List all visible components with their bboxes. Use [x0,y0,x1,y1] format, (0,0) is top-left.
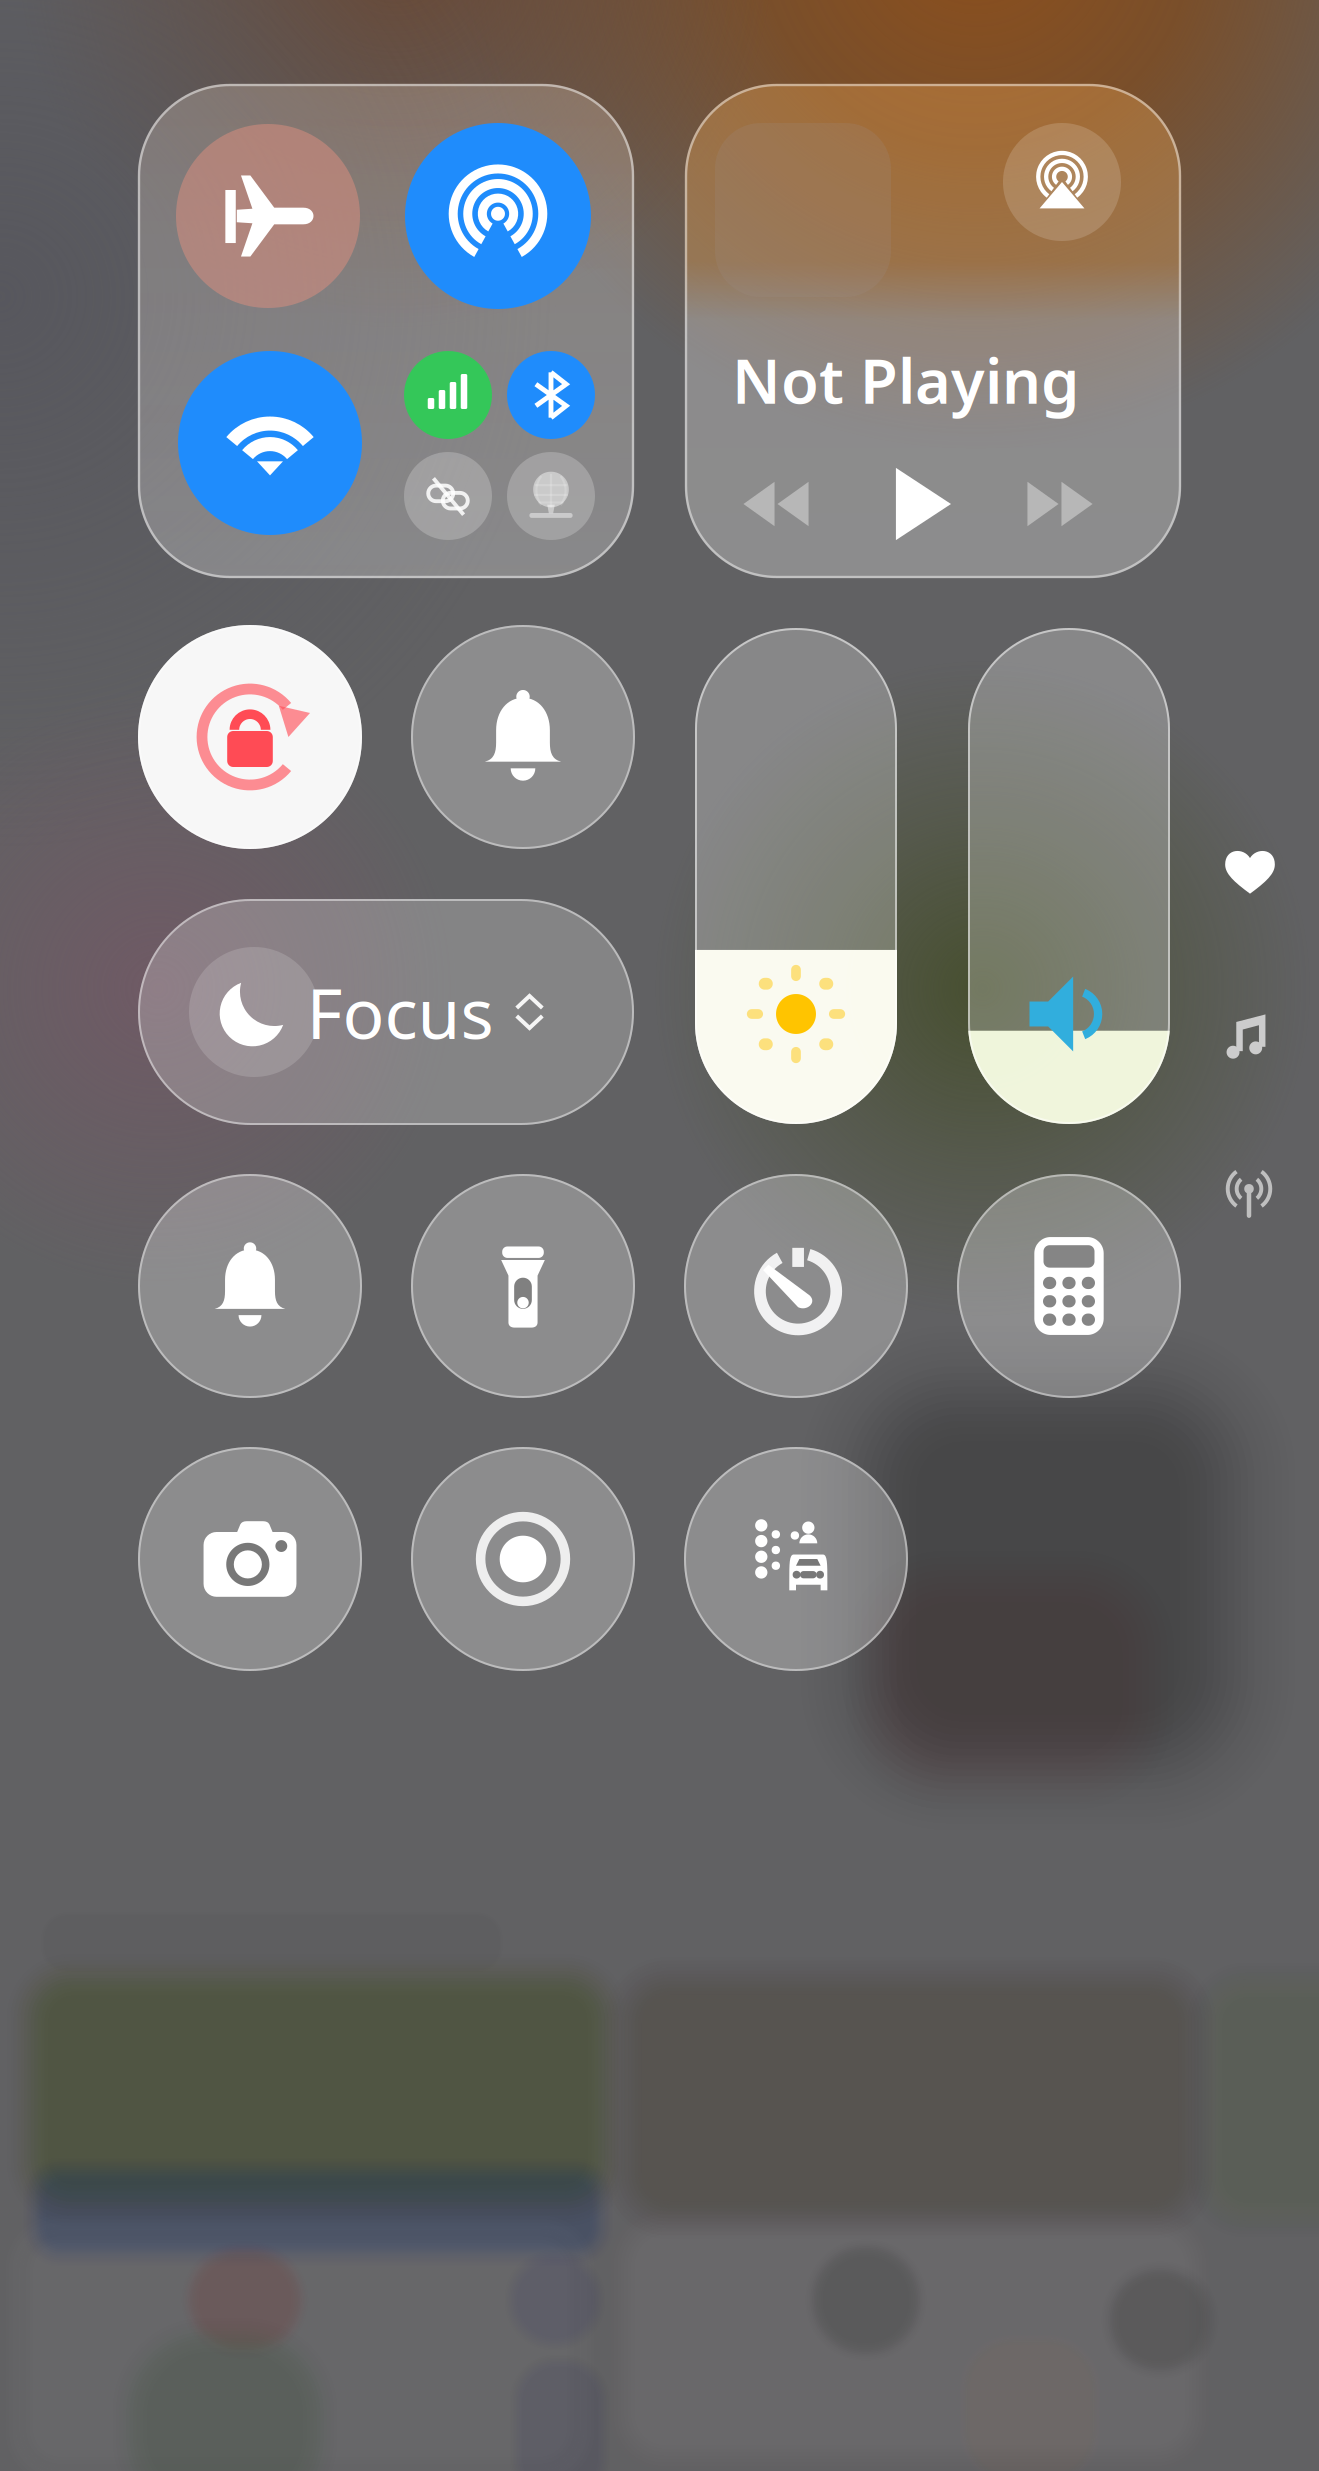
button[interactable]: Play [877,461,963,547]
button[interactable]: Focus [138,899,634,1125]
button[interactable]: Car Wash [684,1447,908,1671]
button[interactable]: Cellular Data [404,351,492,439]
button[interactable]: Timer [684,1174,908,1398]
button[interactable]: Airplane Mode [176,124,360,308]
button[interactable]: Previous Track [739,467,813,541]
button[interactable]: Camera [138,1447,362,1671]
button[interactable]: AirDrop [405,123,591,309]
button[interactable]: VPN [507,452,595,540]
button[interactable]: Silent Mode [411,625,635,849]
button[interactable]: Flashlight [411,1174,635,1398]
button[interactable]: Alarm [138,1174,362,1398]
button[interactable]: Slider [695,628,897,1124]
button[interactable]: Rotation Lock [138,625,362,849]
button[interactable]: AirPlay [1003,123,1121,241]
button[interactable]: Next Track [1023,467,1097,541]
button[interactable]: Connectivity [1210,1161,1288,1239]
staticText: Focus [306,966,493,1058]
button[interactable]: Now Playing [1207,997,1285,1075]
button[interactable]: Slider [968,628,1170,1124]
button[interactable]: Calculator [957,1174,1181,1398]
button[interactable]: Bluetooth [507,351,595,439]
button[interactable]: Home [1211,832,1289,910]
button[interactable]: Screen Recording [411,1447,635,1671]
staticText: Not Playing [732,339,1079,421]
button[interactable]: Personal Hotspot [404,452,492,540]
button[interactable]: Wi-Fi [178,351,362,535]
